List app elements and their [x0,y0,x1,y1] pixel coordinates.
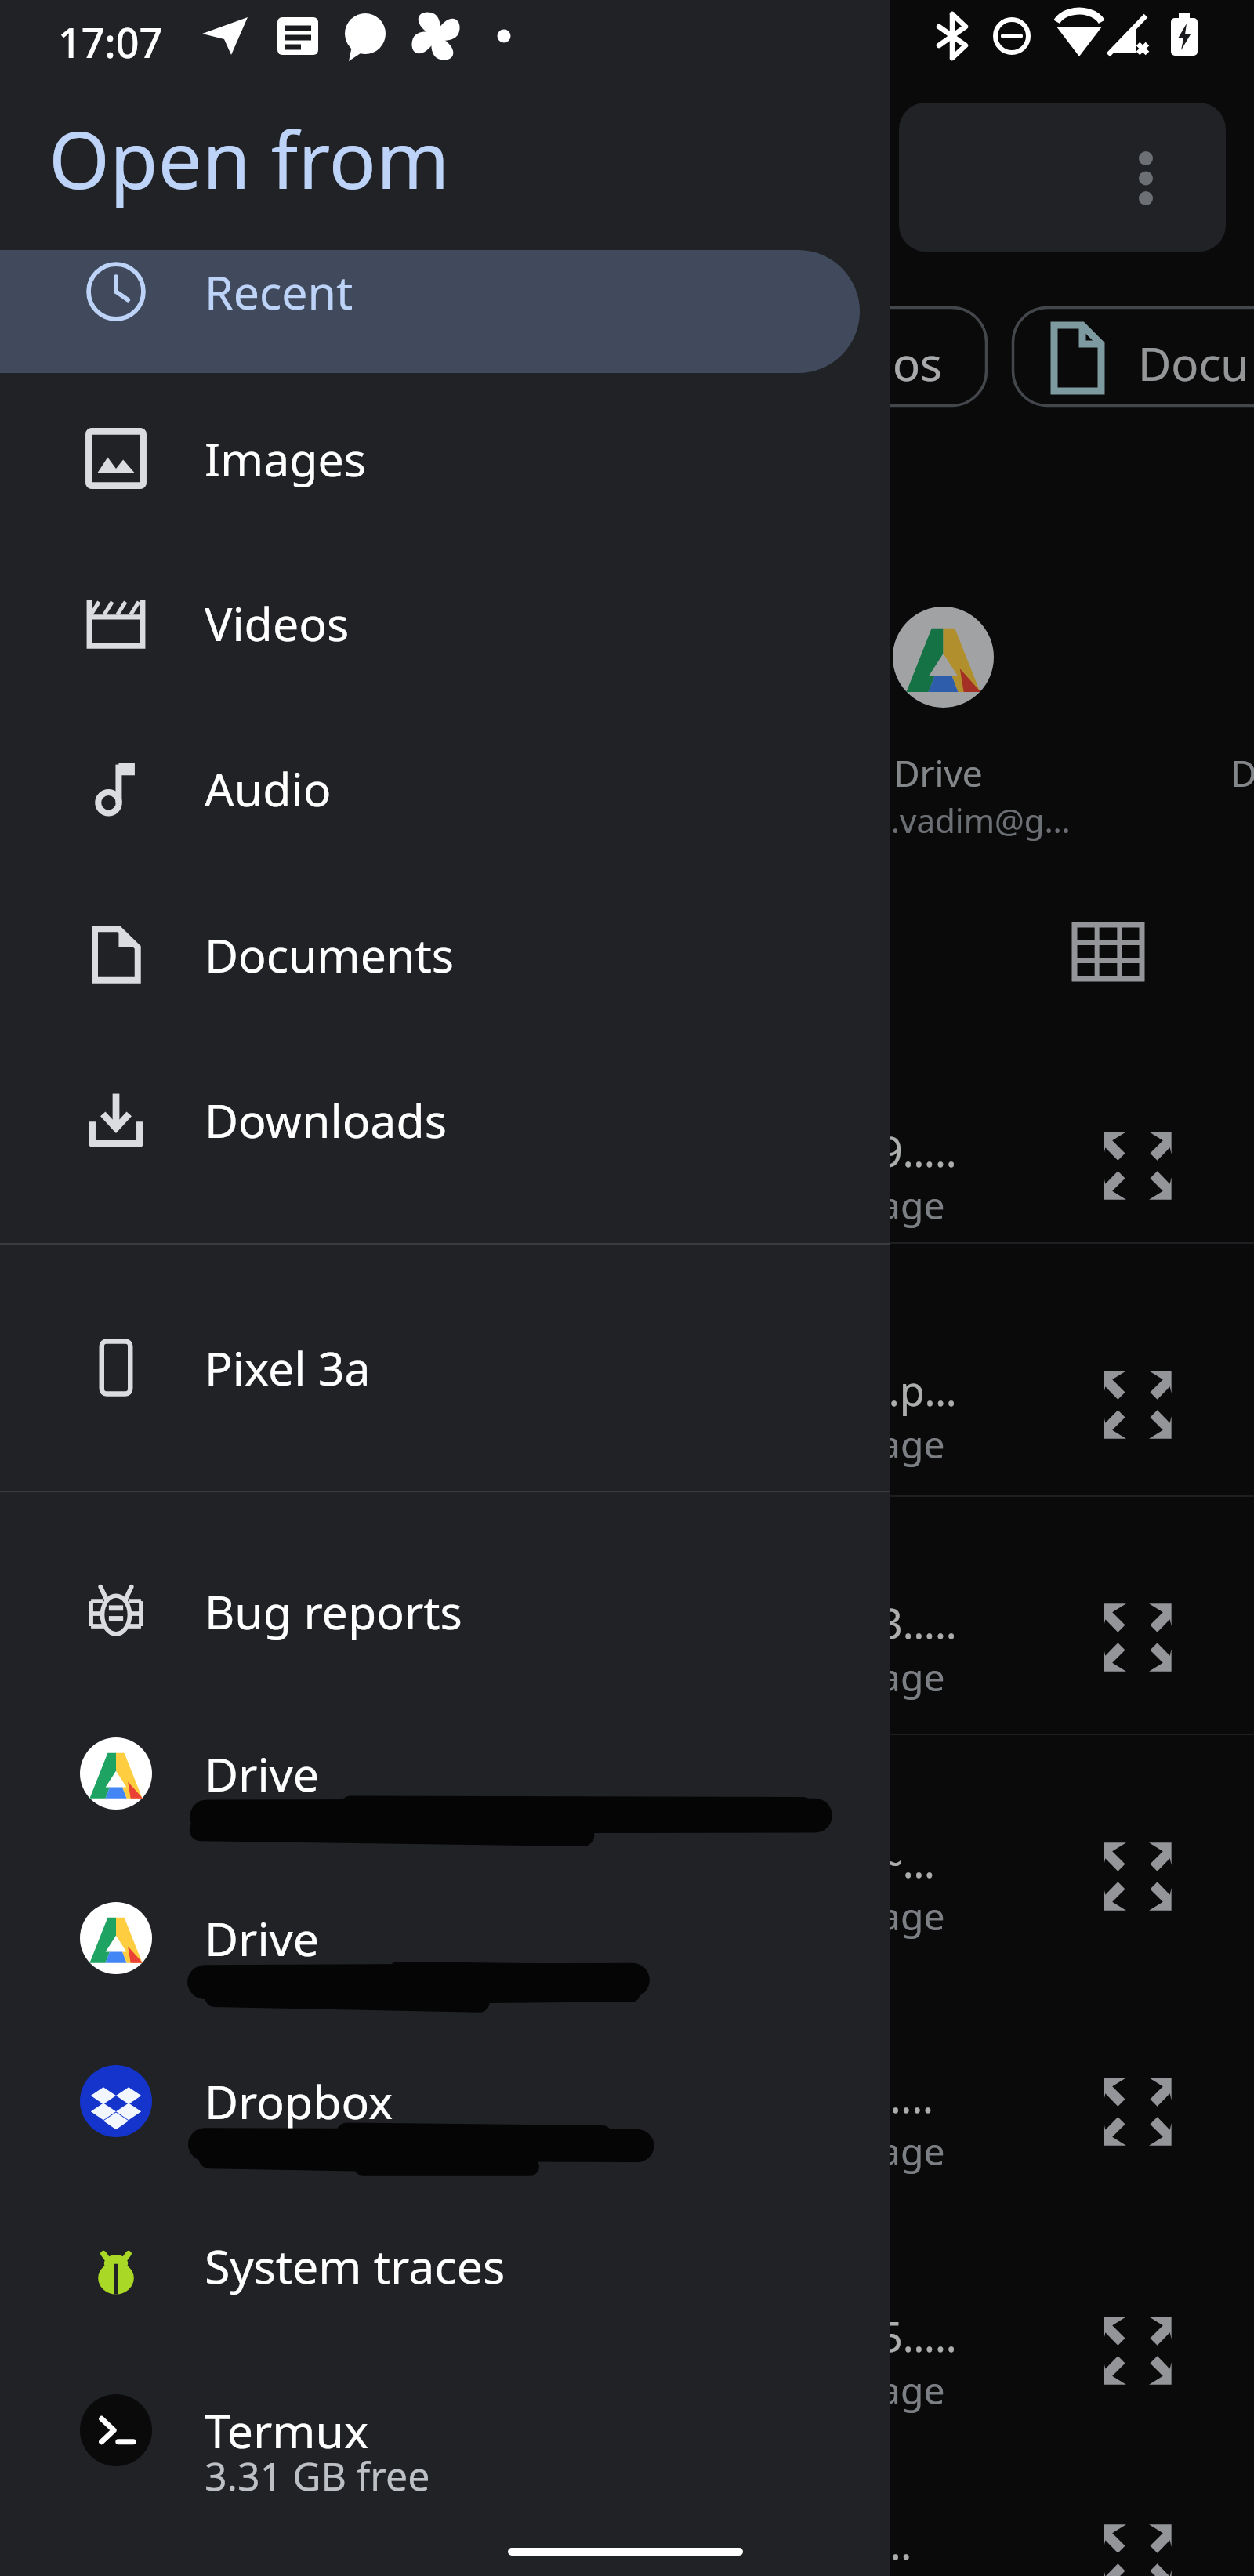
staticText: '.p… [879,1362,957,1418]
staticText: ….. [879,2069,934,2125]
staticText: os [893,332,942,394]
button[interactable]: Recent [0,209,890,374]
staticText: Open from [49,105,450,212]
staticText: Documents [205,923,455,986]
staticText: 9….. [879,1123,957,1179]
button[interactable]: Documents [0,872,890,1037]
staticText: age [879,1179,945,1230]
staticText: Images [205,427,367,490]
staticText: Docu [1138,332,1249,394]
button[interactable]: Downloads [0,1038,890,1202]
button[interactable]: Drive [0,1856,890,2020]
staticText: Termux [205,2399,369,2462]
staticText: Downloads [205,1089,447,1151]
button[interactable]: Videos [0,541,890,705]
staticText: age [879,2125,945,2176]
staticText: Dropbox [205,2070,393,2132]
button[interactable]: Pixel 3a [0,1285,890,1450]
staticText: Drive [205,1742,319,1805]
staticText: Pixel 3a [205,1336,371,1399]
staticText: … [879,2516,912,2571]
staticText: Bug reports [205,1580,462,1643]
staticText: ~… [879,1834,935,1889]
button[interactable]: Images [0,376,890,541]
staticText: Recent [205,260,353,323]
button[interactable]: Audio [0,706,890,871]
staticText: 5….. [879,2308,957,2364]
staticText: Videos [205,592,350,654]
staticText: age [879,1890,945,1941]
staticText: age [879,2364,945,2415]
button[interactable]: Dropbox [0,2019,890,2183]
staticText: Drive [205,1907,319,1969]
staticText: Drive [893,748,983,798]
staticText: age [879,1651,945,1702]
staticText: Audio [205,757,332,820]
staticText: D [1230,748,1254,798]
staticText: age [879,2572,945,2576]
staticText: 3.31 GB free [205,2449,430,2502]
staticText: age [879,1418,945,1469]
staticText: System traces [205,2234,506,2297]
button[interactable]: System traces [0,2183,890,2348]
staticText: 17:07 [58,14,163,70]
button[interactable]: Drive [0,1691,890,1856]
button[interactable]: Termux [0,2348,890,2513]
staticText: 3….. [879,1595,957,1650]
staticText: i.vadim@g… [883,798,1071,842]
button[interactable]: Bug reports [0,1529,890,1694]
